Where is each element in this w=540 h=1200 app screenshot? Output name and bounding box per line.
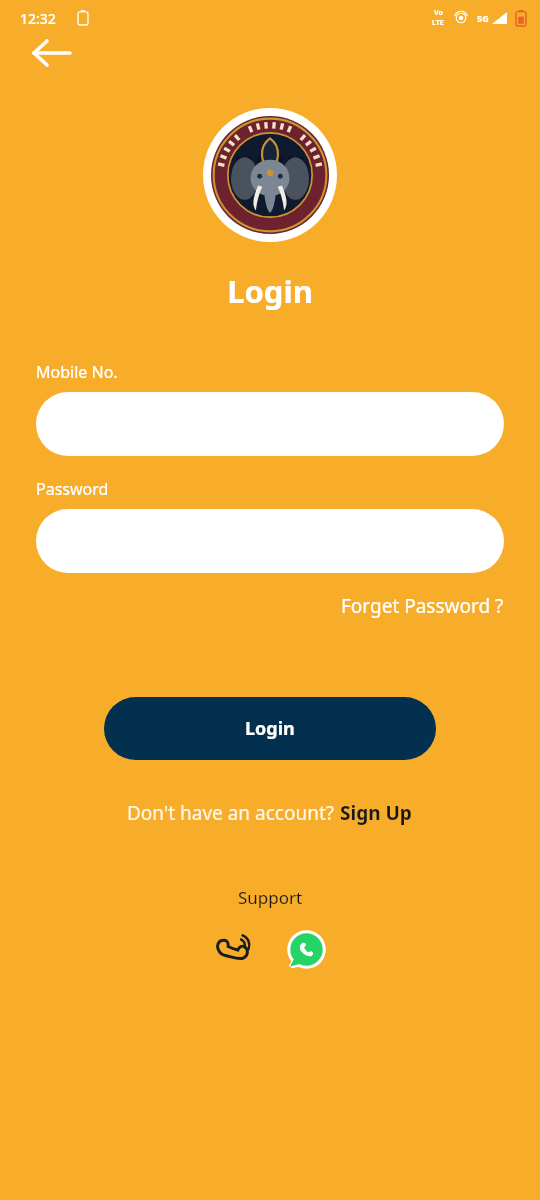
staticText: Login <box>245 716 295 741</box>
button[interactable]: WhatsApp support <box>282 925 330 973</box>
button[interactable]: Login <box>104 697 436 760</box>
staticText: 12:32 <box>20 9 56 28</box>
button[interactable] <box>36 509 504 573</box>
staticText: Sign Up <box>340 800 412 826</box>
staticText: Support <box>238 886 303 909</box>
staticText: LTE <box>432 18 444 28</box>
staticText: Mobile No. <box>36 361 118 383</box>
staticText: 5G <box>477 12 489 24</box>
staticText: Password <box>36 478 109 500</box>
staticText: Vo <box>434 8 443 18</box>
staticText: Forget Password ? <box>341 593 504 619</box>
button[interactable]: Forget Password ? <box>339 590 506 622</box>
staticText: Don't have an account? <box>127 800 339 826</box>
button[interactable] <box>36 392 504 456</box>
button[interactable]: Sign Up <box>339 797 413 829</box>
button[interactable]: Call support <box>211 925 259 973</box>
staticText: Login <box>227 270 313 312</box>
button[interactable]: Back <box>22 31 82 75</box>
